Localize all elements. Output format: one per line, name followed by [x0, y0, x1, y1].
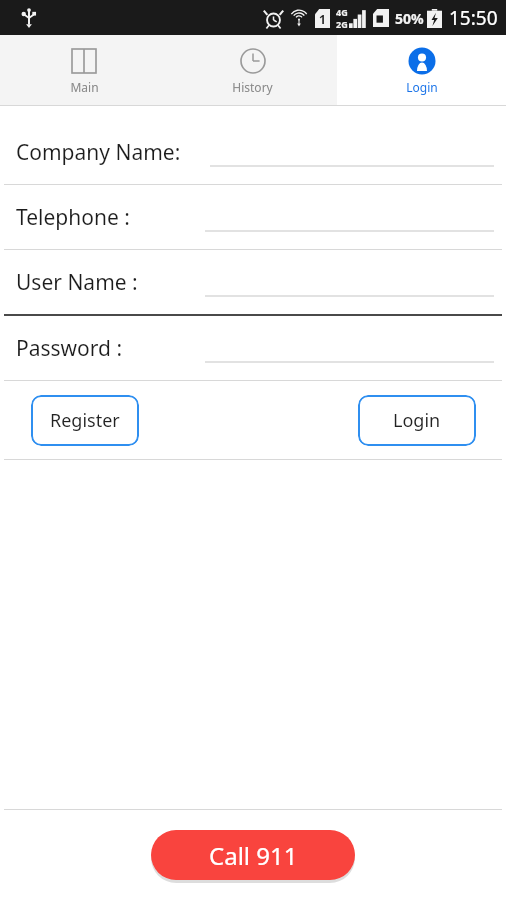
staticText: 2G [336, 18, 348, 30]
other: Main [69, 46, 99, 76]
staticText: Telephone : [16, 203, 130, 232]
staticText: Login [393, 408, 441, 433]
button[interactable]: Login [337, 35, 506, 105]
staticText: 50% [395, 9, 424, 28]
button[interactable]: History [168, 35, 337, 105]
button[interactable]: Login [358, 395, 476, 446]
staticText: 1 [319, 11, 326, 27]
other: History [238, 46, 268, 76]
button[interactable]: Register [31, 395, 139, 446]
staticText: Call 911 [209, 839, 298, 872]
staticText: History [232, 79, 273, 95]
staticText: Main [70, 79, 99, 95]
staticText: 4G [336, 6, 348, 18]
staticText: Login [406, 79, 438, 95]
staticText: 15:50 [449, 5, 498, 31]
staticText: Register [50, 408, 120, 433]
staticText: Company Name: [16, 138, 181, 167]
other: Login [407, 46, 437, 76]
staticText: User Name : [16, 268, 138, 297]
staticText: Password : [16, 334, 123, 363]
button[interactable]: Main [0, 35, 168, 105]
button[interactable]: Call 911 [151, 830, 355, 880]
